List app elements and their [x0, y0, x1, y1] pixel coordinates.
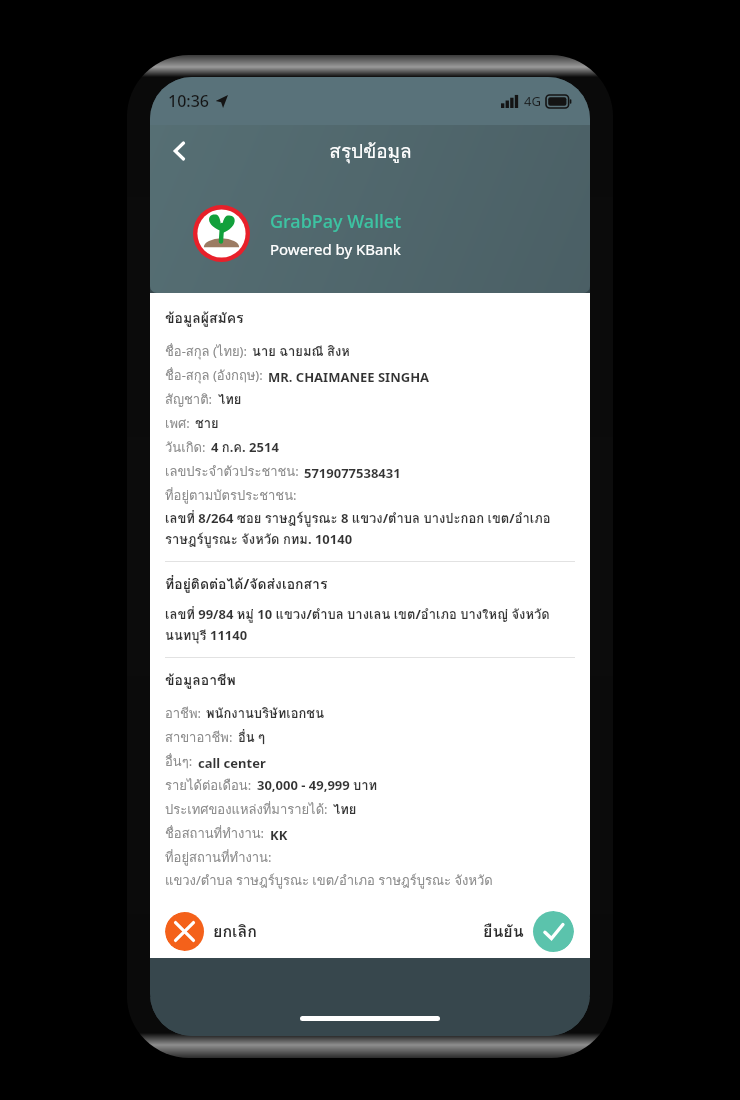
button[interactable]: Back — [158, 129, 202, 173]
button[interactable]: ยกเลิก — [165, 912, 263, 951]
staticText: ประเทศของแหล่งที่มารายได้: — [165, 799, 328, 820]
staticText: ไทย — [333, 799, 357, 820]
staticText: ข้อมูลผู้สมัคร — [165, 307, 244, 329]
staticText: อื่น ๆ — [238, 727, 266, 748]
staticText: 4G — [524, 92, 541, 110]
staticText: แขวง/ตำบล ราษฎร์บูรณะ เขต/อำเภอ ราษฎร์บู… — [165, 870, 493, 891]
staticText: 5719077538431 — [304, 464, 401, 482]
staticText: สัญชาติ: — [165, 389, 213, 410]
staticText: ชื่อ-สกุล (อังกฤษ): — [165, 365, 263, 386]
staticText: 30,000 - 49,999 บาท — [257, 775, 378, 796]
staticText: อาชีพ: — [165, 703, 201, 724]
staticText: ที่อยู่ตามบัตรประชาชน: — [165, 485, 297, 506]
staticText: ยกเลิก — [213, 919, 257, 944]
staticText: ยืนยัน — [483, 919, 524, 944]
staticText: Powered by KBank — [270, 239, 401, 259]
staticText: สาขาอาชีพ: — [165, 727, 233, 748]
staticText: สรุปข้อมูล — [329, 136, 412, 166]
staticText: เลขประจำตัวประชาชน: — [165, 461, 299, 482]
staticText: 4 ก.ค. 2514 — [211, 437, 279, 458]
staticText: ชาย — [195, 413, 219, 434]
staticText: ชื่อ-สกุล (ไทย): — [165, 341, 247, 362]
staticText: ที่อยู่ติดต่อได้/จัดส่งเอกสาร — [165, 573, 328, 595]
staticText: เลขที่ 8/264 ซอย ราษฎร์บูรณะ 8 แขวง/ตำบล… — [165, 508, 575, 550]
staticText: ไทย — [218, 389, 242, 410]
staticText: 10:36 — [168, 90, 209, 112]
staticText: ที่อยู่สถานที่ทำงาน: — [165, 847, 272, 868]
staticText: พนักงานบริษัทเอกชน — [206, 703, 325, 724]
staticText: GrabPay Wallet — [270, 209, 402, 234]
staticText: เลขที่ 99/84 หมู่ 10 แขวง/ตำบล บางเลน เข… — [165, 604, 575, 646]
staticText: วันเกิด: — [165, 437, 206, 458]
staticText: รายได้ต่อเดือน: — [165, 775, 252, 796]
staticText: call center — [198, 754, 266, 772]
staticText: นาย ฉายมณี สิงห — [252, 341, 350, 362]
staticText: MR. CHAIMANEE SINGHA — [268, 368, 430, 386]
staticText: KK — [270, 826, 288, 844]
staticText: ข้อมูลอาชีพ — [165, 669, 236, 691]
staticText: ชื่อสถานที่ทำงาน: — [165, 823, 265, 844]
button[interactable]: ยืนยัน — [477, 911, 574, 952]
staticText: อื่นๆ: — [165, 751, 193, 772]
staticText: เพศ: — [165, 413, 190, 434]
